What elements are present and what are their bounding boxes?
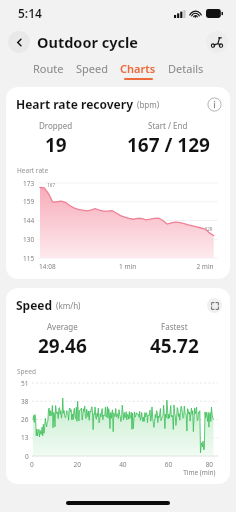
staticText: Start / End [148, 120, 188, 131]
button[interactable]: Speed [6, 288, 230, 484]
staticText: (bpm) [137, 99, 160, 110]
staticText: Details [168, 61, 204, 76]
staticText: 19 [45, 132, 67, 158]
staticText: 29.46 [38, 333, 87, 359]
button[interactable]: Back [8, 31, 30, 53]
staticText: Dropped [39, 120, 73, 131]
staticText: (km/h) [56, 300, 81, 311]
staticText: 45.72 [150, 333, 199, 359]
staticText: 5:14 [18, 5, 42, 21]
button[interactable]: Info [207, 97, 222, 112]
staticText: Charts [120, 61, 156, 76]
button[interactable]: Route [32, 61, 65, 80]
staticText: 167 / 129 [127, 132, 210, 158]
button[interactable]: Charts [119, 61, 157, 80]
staticText: Fastest [161, 321, 188, 332]
button[interactable]: Details [167, 61, 205, 80]
staticText: Speed [16, 297, 53, 313]
staticText: Speed [76, 61, 108, 76]
staticText: Heart rate [17, 166, 49, 175]
staticText: Speed [17, 367, 36, 376]
button[interactable]: Activity type [206, 31, 228, 53]
button[interactable]: Speed [75, 61, 109, 80]
button[interactable]: Expand chart [207, 298, 222, 313]
staticText: Heart rate recovery [16, 96, 134, 112]
staticText: Average [47, 321, 78, 332]
button[interactable]: Heart rate recovery [6, 87, 230, 279]
staticText: Route [33, 61, 64, 76]
staticText: Outdoor cycle [37, 32, 138, 52]
